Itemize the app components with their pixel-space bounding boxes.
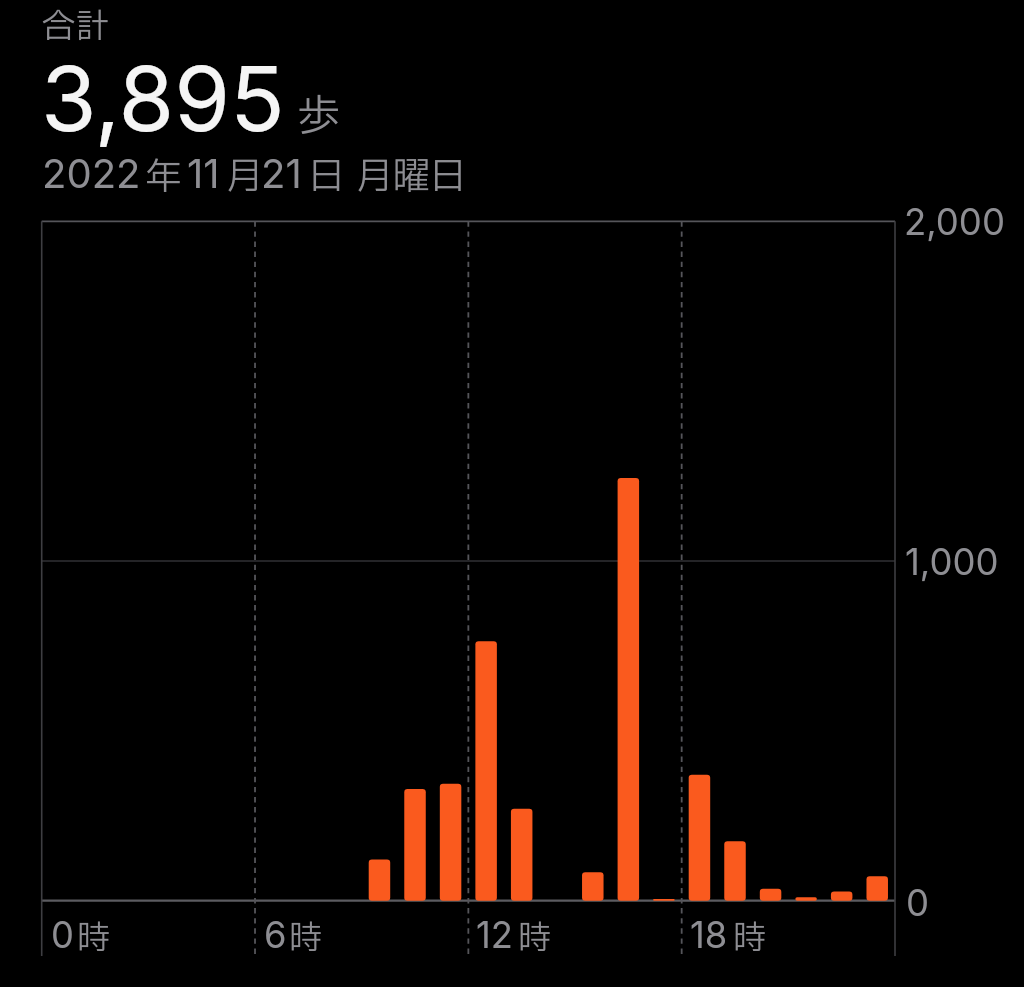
staticText: 0 [906,881,930,925]
staticText: 月曜日 [356,150,467,205]
staticText: 時 [289,914,322,963]
staticText: 合計 [42,2,109,52]
staticText: 時 [518,914,551,963]
staticText: 6 [264,913,287,957]
staticText: 2,000 [904,200,1005,244]
staticText: 2022 [42,149,141,197]
staticText: 時 [77,914,110,963]
staticText: 12 [476,913,513,957]
staticText: 月 [226,150,263,205]
staticText: 18 [690,913,728,957]
staticText: 年 [145,150,182,205]
button[interactable]: Hourly step count chart [0,0,1024,987]
staticText: 11 [187,149,220,197]
staticText: 0 [51,913,74,957]
staticText: 歩 [297,85,340,149]
staticText: 1,000 [905,540,999,584]
staticText: 3,895 [41,44,285,153]
staticText: 21 [261,149,302,197]
staticText: 日 [308,150,345,205]
staticText: 時 [733,914,766,963]
